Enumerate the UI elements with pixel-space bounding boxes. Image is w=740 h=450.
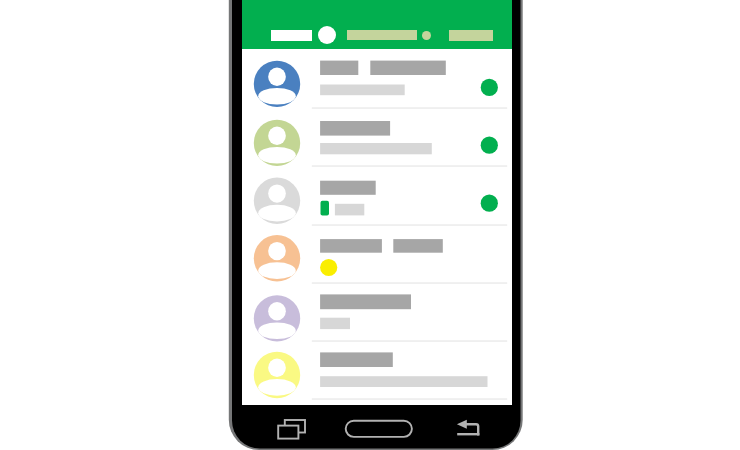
button[interactable]: Recent apps xyxy=(272,413,308,445)
button[interactable]: Conversation 2 xyxy=(242,108,512,166)
button[interactable]: Conversation 3 xyxy=(242,166,512,225)
button[interactable]: Conversation 5 xyxy=(242,283,512,341)
button[interactable]: Conversation 6 xyxy=(242,341,512,399)
button[interactable]: Home xyxy=(343,416,415,442)
button[interactable]: More options xyxy=(422,31,431,40)
button[interactable]: Search xyxy=(318,26,336,44)
button[interactable]: Conversation 4 xyxy=(242,225,512,283)
button[interactable]: Conversation 1 xyxy=(242,49,512,108)
button[interactable]: Back xyxy=(454,416,484,442)
